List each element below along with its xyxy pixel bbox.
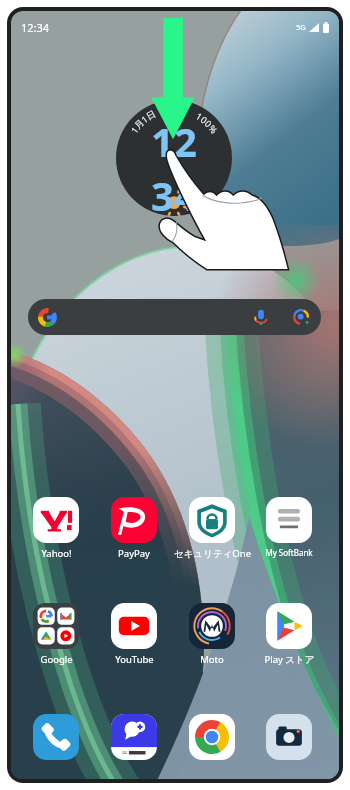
staticText: 12:34 <box>21 20 50 35</box>
staticText: Moto <box>200 653 224 666</box>
button[interactable]: Voice search <box>252 308 270 326</box>
button[interactable]: Moto <box>173 603 251 666</box>
staticText: Yahoo! <box>41 547 72 560</box>
button[interactable]: Google Search <box>28 299 321 335</box>
button[interactable]: Chrome <box>175 714 249 760</box>
staticText: Google <box>40 653 73 666</box>
staticText: PayPay <box>118 547 150 560</box>
button[interactable]: Yahoo! <box>17 497 95 560</box>
button[interactable]: My SoftBank <box>250 497 328 558</box>
button[interactable]: 12 <box>116 100 232 216</box>
staticText: Play ストア <box>264 653 315 666</box>
button[interactable]: Messages <box>97 714 171 760</box>
staticText: セキュリティOne <box>174 547 251 560</box>
staticText: 12 <box>151 114 197 168</box>
button[interactable]: Google Lens <box>292 308 310 326</box>
staticText: YouTube <box>115 653 154 666</box>
staticText: 34 <box>151 168 197 216</box>
staticText: 5G <box>296 22 306 32</box>
button[interactable]: PayPay <box>95 497 173 560</box>
button[interactable]: YouTube <box>95 603 173 666</box>
button[interactable]: Phone <box>19 714 93 760</box>
button[interactable]: Google <box>17 603 95 666</box>
button[interactable]: Camera <box>252 714 326 760</box>
button[interactable]: Play ストア <box>250 603 328 666</box>
staticText: My SoftBank <box>265 547 313 558</box>
other: Google Search <box>38 308 57 327</box>
button[interactable]: セキュリティOne <box>173 497 251 560</box>
